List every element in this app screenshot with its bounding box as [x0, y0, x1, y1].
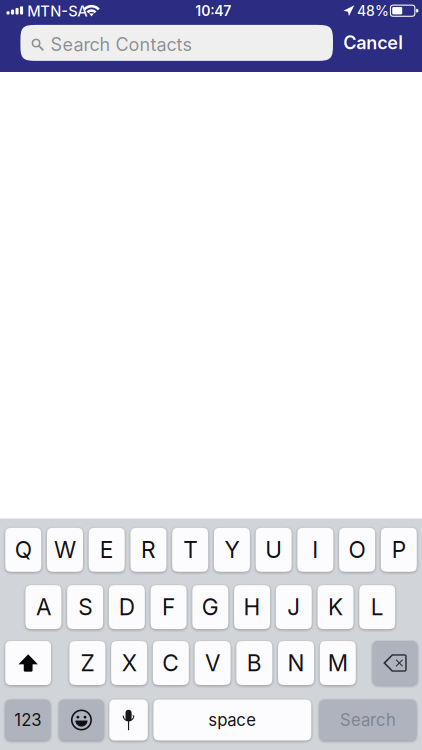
button[interactable]: F [151, 585, 187, 629]
button[interactable]: 123 [5, 699, 50, 740]
button[interactable]: O [339, 528, 375, 572]
staticText: X [122, 649, 137, 677]
staticText: T [183, 536, 197, 563]
staticText: G [202, 593, 219, 621]
staticText: Q [15, 536, 32, 563]
button[interactable]: Emoji [59, 699, 104, 740]
staticText: B [247, 649, 262, 677]
staticText: space [208, 710, 256, 730]
button[interactable]: N [278, 641, 314, 685]
staticText: P [392, 536, 406, 563]
staticText: J [287, 593, 300, 621]
button[interactable]: Y [214, 528, 250, 572]
button[interactable]: space [153, 699, 311, 740]
staticText: R [141, 536, 156, 563]
staticText: A [36, 593, 51, 621]
button[interactable]: Q [5, 528, 41, 572]
button[interactable]: C [153, 641, 189, 685]
staticText: D [119, 593, 135, 621]
button[interactable]: G [192, 585, 228, 629]
staticText: 10:47 [195, 2, 231, 19]
button[interactable]: Search [319, 699, 416, 740]
staticText: W [54, 536, 76, 563]
button[interactable]: A [25, 585, 61, 629]
button[interactable]: L [359, 585, 395, 629]
button[interactable]: U [256, 528, 292, 572]
button[interactable]: K [317, 585, 353, 629]
button[interactable]: Z [69, 641, 105, 685]
staticText: H [243, 593, 260, 621]
staticText: 48% [357, 2, 389, 19]
staticText: F [162, 593, 175, 621]
staticText: L [371, 593, 384, 621]
staticText: Cancel [343, 32, 403, 54]
button[interactable]: D [109, 585, 145, 629]
button[interactable]: Cancel [338, 24, 408, 62]
button[interactable]: Delete [373, 641, 417, 685]
button[interactable]: H [234, 585, 270, 629]
staticText: Y [224, 536, 239, 563]
button[interactable]: X [111, 641, 147, 685]
button[interactable]: M [320, 641, 356, 685]
staticText: I [312, 536, 318, 563]
staticText: U [265, 536, 282, 563]
button[interactable]: E [89, 528, 125, 572]
staticText: E [100, 536, 114, 563]
button[interactable]: Shift [5, 641, 51, 685]
staticText: MTN-SA [27, 2, 87, 20]
staticText: V [205, 649, 220, 677]
button[interactable]: R [130, 528, 166, 572]
staticText: M [328, 649, 348, 677]
button[interactable]: J [276, 585, 312, 629]
staticText: O [349, 536, 366, 563]
staticText: Z [80, 649, 94, 677]
staticText: K [328, 593, 343, 621]
staticText: S [78, 593, 92, 621]
button[interactable]: T [172, 528, 208, 572]
button[interactable]: I [297, 528, 333, 572]
staticText: Search Contacts [50, 33, 192, 55]
staticText: Search [340, 710, 396, 730]
button[interactable]: Dictation [109, 699, 148, 740]
staticText: C [162, 649, 179, 677]
staticText: N [287, 649, 304, 677]
button[interactable]: V [195, 641, 231, 685]
staticText: 123 [14, 710, 41, 730]
button[interactable]: B [236, 641, 272, 685]
button[interactable]: W [47, 528, 83, 572]
button[interactable]: P [381, 528, 417, 572]
button[interactable]: S [67, 585, 103, 629]
